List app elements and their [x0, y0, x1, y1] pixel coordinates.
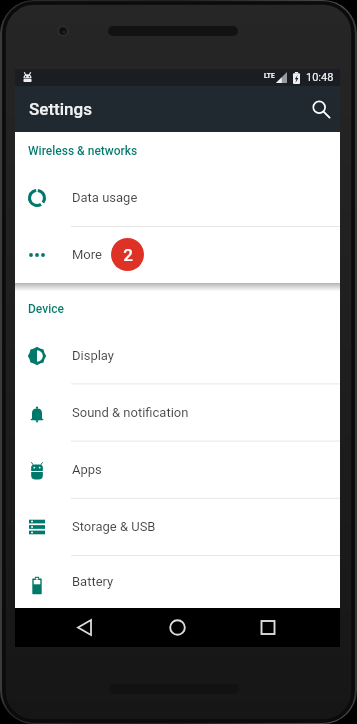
staticText: Sound & notification	[72, 405, 189, 420]
staticText: LTE	[264, 72, 275, 80]
staticText: Data usage	[72, 190, 138, 205]
button[interactable]: Apps	[15, 441, 340, 498]
staticText: 10:48	[306, 71, 334, 84]
button[interactable]: Search	[303, 91, 339, 127]
button[interactable]: Data usage	[15, 169, 340, 226]
staticText: Battery	[72, 574, 114, 589]
staticText: Storage & USB	[72, 519, 156, 534]
staticText: Device	[28, 302, 64, 316]
staticText: 2	[123, 245, 133, 265]
button[interactable]: Display	[15, 327, 340, 384]
button[interactable]: Storage & USB	[15, 498, 340, 555]
button[interactable]: Sound & notification	[15, 384, 340, 441]
staticText: Apps	[72, 462, 102, 477]
button[interactable]: More	[15, 226, 340, 283]
staticText: More	[72, 247, 102, 262]
staticText: Display	[72, 348, 114, 363]
staticText: Wireless & networks	[28, 144, 138, 158]
staticText: Settings	[29, 99, 92, 119]
button[interactable]: Battery	[15, 555, 340, 608]
